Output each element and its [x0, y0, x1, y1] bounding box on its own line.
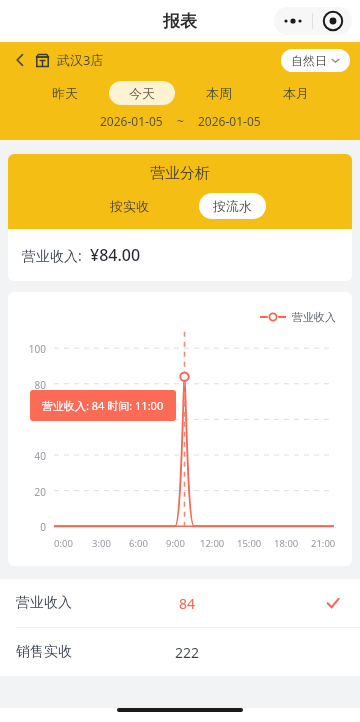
staticText: 报表: [163, 11, 197, 32]
staticText: 昨天: [52, 85, 78, 101]
button[interactable]: Close: [313, 7, 352, 35]
button[interactable]: 自然日: [281, 49, 350, 72]
staticText: 0: [14, 520, 46, 534]
staticText: 营业收入:: [22, 246, 82, 265]
button[interactable]: More: [274, 7, 312, 35]
button[interactable]: 本周: [186, 81, 252, 105]
button[interactable]: Back: [10, 50, 30, 70]
staticText: 6:00: [129, 537, 148, 550]
staticText: 本月: [283, 85, 309, 101]
button[interactable]: 按实收: [94, 193, 165, 219]
staticText: 15:00: [237, 537, 262, 550]
button[interactable]: 按流水: [199, 193, 266, 219]
staticText: 自然日: [291, 53, 327, 68]
staticText: 40: [14, 449, 46, 463]
staticText: 222: [175, 643, 200, 662]
staticText: 按流水: [213, 198, 252, 214]
staticText: 销售实收: [16, 643, 72, 661]
staticText: 今天: [129, 85, 155, 101]
button[interactable]: 昨天: [32, 81, 98, 105]
staticText: 营业收入: [292, 310, 336, 324]
staticText: 12:00: [200, 537, 225, 550]
staticText: 营业分析: [150, 164, 210, 183]
button[interactable]: 今天: [109, 81, 175, 105]
staticText: 武汉3店: [57, 51, 104, 69]
staticText: 80: [14, 378, 46, 392]
staticText: 营业收入: [16, 594, 72, 612]
staticText: 3:00: [92, 537, 111, 550]
button[interactable]: 销售实收: [0, 628, 360, 676]
staticText: ~: [177, 113, 184, 129]
staticText: 18:00: [274, 537, 299, 550]
staticText: 84: [179, 594, 196, 613]
staticText: 0:00: [54, 537, 73, 550]
staticText: 21:00: [311, 537, 336, 550]
button[interactable]: 营业收入: [0, 579, 360, 627]
staticText: 营业收入: 84 时间: 11:00: [42, 398, 164, 413]
staticText: ¥84.00: [90, 244, 141, 266]
staticText: 按实收: [110, 198, 149, 214]
staticText: 本周: [206, 85, 232, 101]
button[interactable]: 2026-01-05: [198, 113, 261, 129]
button[interactable]: 本月: [263, 81, 329, 105]
button[interactable]: 2026-01-05: [100, 113, 163, 129]
staticText: 100: [14, 342, 46, 356]
staticText: 9:00: [166, 537, 185, 550]
staticText: 20: [14, 485, 46, 499]
